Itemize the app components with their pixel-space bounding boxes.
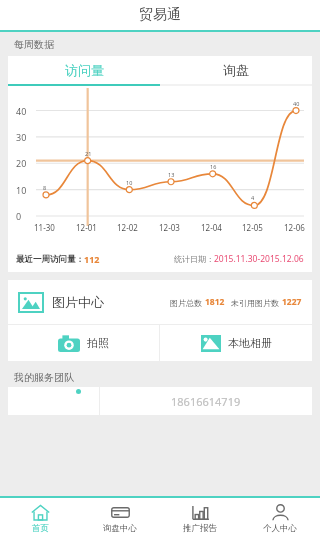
staticText: 21 xyxy=(85,150,92,157)
staticText: 最近一周访问量： xyxy=(16,254,84,265)
staticText: 首页 xyxy=(32,523,49,534)
staticText: 12-03 xyxy=(159,222,180,233)
staticText: 本地相册 xyxy=(228,336,272,350)
staticText: 询盘 xyxy=(223,62,249,78)
staticText: 40 xyxy=(16,105,27,117)
button[interactable]: 询盘 xyxy=(160,56,312,84)
staticText: 12-06 xyxy=(284,222,305,233)
staticText: 个人中心 xyxy=(263,523,297,534)
staticText: 拍照 xyxy=(87,336,109,350)
staticText: 访问量 xyxy=(65,62,104,78)
button[interactable]: 个人中心 xyxy=(240,498,320,540)
staticText: 0 xyxy=(16,210,22,222)
staticText: 4 xyxy=(251,194,255,201)
staticText: 未引用图片数 xyxy=(231,297,282,308)
button[interactable]: 访问量 xyxy=(8,56,160,84)
staticText: 40 xyxy=(293,100,300,107)
staticText: 112 xyxy=(84,253,100,265)
button[interactable]: 图片中心 xyxy=(8,280,312,324)
staticText: 8 xyxy=(43,184,47,191)
button[interactable]: 询盘中心 xyxy=(80,498,160,540)
button[interactable]: 18616614719 xyxy=(8,387,312,415)
staticText: 我的服务团队 xyxy=(14,371,74,384)
staticText: 贸易通 xyxy=(139,6,181,24)
staticText: 10 xyxy=(16,184,27,196)
staticText: 10 xyxy=(126,179,133,186)
staticText: 12-04 xyxy=(201,222,222,233)
button[interactable]: 首页 xyxy=(0,498,80,540)
staticText: 1227 xyxy=(282,296,302,308)
staticText: 20 xyxy=(16,157,27,169)
staticText: 图片中心 xyxy=(52,294,104,310)
staticText: 每周数据 xyxy=(14,38,54,51)
staticText: 18616614719 xyxy=(171,394,241,409)
staticText: 图片总数 xyxy=(170,297,205,308)
staticText: 统计日期： xyxy=(174,254,214,264)
button[interactable]: 推广报告 xyxy=(160,498,240,540)
staticText: 2015.11.30-2015.12.06 xyxy=(214,253,304,265)
staticText: 11-30 xyxy=(34,222,55,233)
button[interactable]: 拍照 xyxy=(8,325,159,361)
staticText: 12-02 xyxy=(117,222,138,233)
staticText: 30 xyxy=(16,131,27,143)
button[interactable]: 本地相册 xyxy=(160,325,312,361)
staticText: 16 xyxy=(210,163,217,170)
staticText: 12-05 xyxy=(242,222,263,233)
staticText: 13 xyxy=(168,171,175,178)
staticText: 推广报告 xyxy=(183,523,217,534)
staticText: 12-01 xyxy=(76,222,97,233)
staticText: 询盘中心 xyxy=(103,523,137,534)
staticText: 1812 xyxy=(205,296,225,308)
